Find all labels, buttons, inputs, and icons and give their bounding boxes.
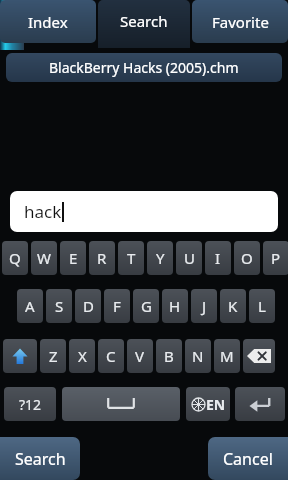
staticText: X xyxy=(78,346,87,366)
staticText: J xyxy=(202,296,207,316)
button[interactable]: Y xyxy=(147,241,173,275)
staticText: BlackBerry Hacks (2005).chm xyxy=(49,58,239,77)
button[interactable]: U xyxy=(176,241,202,275)
staticText: Cancel xyxy=(223,448,273,470)
button[interactable]: ?12 xyxy=(4,387,56,421)
staticText: I xyxy=(215,248,221,268)
staticText: B xyxy=(164,346,174,366)
button[interactable]: H xyxy=(162,289,188,323)
staticText: K xyxy=(228,296,238,316)
button[interactable]: D xyxy=(75,289,101,323)
button[interactable]: A xyxy=(17,289,43,323)
button[interactable]: V xyxy=(127,339,153,373)
staticText: ?12 xyxy=(19,395,42,414)
button[interactable]: E xyxy=(60,241,86,275)
button[interactable]: F xyxy=(104,289,130,323)
button[interactable]: P xyxy=(263,241,288,275)
staticText: Q xyxy=(9,248,21,268)
staticText: L xyxy=(258,296,266,316)
staticText: G xyxy=(141,296,152,316)
button[interactable]: hack xyxy=(10,191,278,232)
staticText: O xyxy=(241,248,253,268)
button[interactable]: Backspace xyxy=(243,339,275,373)
button[interactable]: B xyxy=(156,339,182,373)
staticText: Index xyxy=(28,12,68,32)
button[interactable]: K xyxy=(220,289,246,323)
button[interactable]: T xyxy=(118,241,144,275)
button[interactable]: S xyxy=(46,289,72,323)
staticText: U xyxy=(184,248,195,268)
button[interactable]: L xyxy=(249,289,275,323)
button[interactable]: Z xyxy=(40,339,66,373)
staticText: hack xyxy=(24,200,62,223)
staticText: P xyxy=(271,248,281,268)
button[interactable]: R xyxy=(89,241,115,275)
staticText: Y xyxy=(156,248,165,268)
button[interactable]: M xyxy=(214,339,240,373)
staticText: C xyxy=(106,346,116,366)
button[interactable]: O xyxy=(234,241,260,275)
button[interactable]: Enter xyxy=(235,387,285,421)
staticText: Favorite xyxy=(212,12,269,32)
staticText: F xyxy=(113,296,121,316)
button[interactable]: BlackBerry Hacks (2005).chm xyxy=(6,53,282,82)
staticText: S xyxy=(55,296,64,316)
staticText: W xyxy=(37,248,51,268)
button[interactable]: Q xyxy=(2,241,28,275)
button[interactable]: N xyxy=(185,339,211,373)
button[interactable]: Search xyxy=(0,437,80,480)
button[interactable]: W xyxy=(31,241,57,275)
staticText: E xyxy=(69,248,78,268)
button[interactable]: Cancel xyxy=(208,437,288,480)
staticText: M xyxy=(220,346,234,366)
button[interactable]: Switch language xyxy=(186,387,230,421)
staticText: R xyxy=(97,248,107,268)
button[interactable]: J xyxy=(191,289,217,323)
staticText: T xyxy=(127,248,136,268)
button[interactable]: I xyxy=(205,241,231,275)
button[interactable]: G xyxy=(133,289,159,323)
button[interactable]: Favorite xyxy=(192,0,288,43)
button[interactable]: Space xyxy=(62,387,180,421)
staticText: V xyxy=(135,346,145,366)
staticText: A xyxy=(25,296,35,316)
staticText: N xyxy=(192,346,204,366)
button[interactable]: Search xyxy=(98,0,190,48)
staticText: EN xyxy=(206,395,226,414)
staticText: H xyxy=(169,296,181,316)
staticText: D xyxy=(83,296,94,316)
button[interactable]: X xyxy=(69,339,95,373)
button[interactable]: Index xyxy=(0,0,96,43)
staticText: Search xyxy=(15,448,66,470)
staticText: Z xyxy=(49,346,58,366)
staticText: Search xyxy=(120,11,168,31)
button[interactable]: C xyxy=(98,339,124,373)
button[interactable]: Shift xyxy=(3,339,37,373)
